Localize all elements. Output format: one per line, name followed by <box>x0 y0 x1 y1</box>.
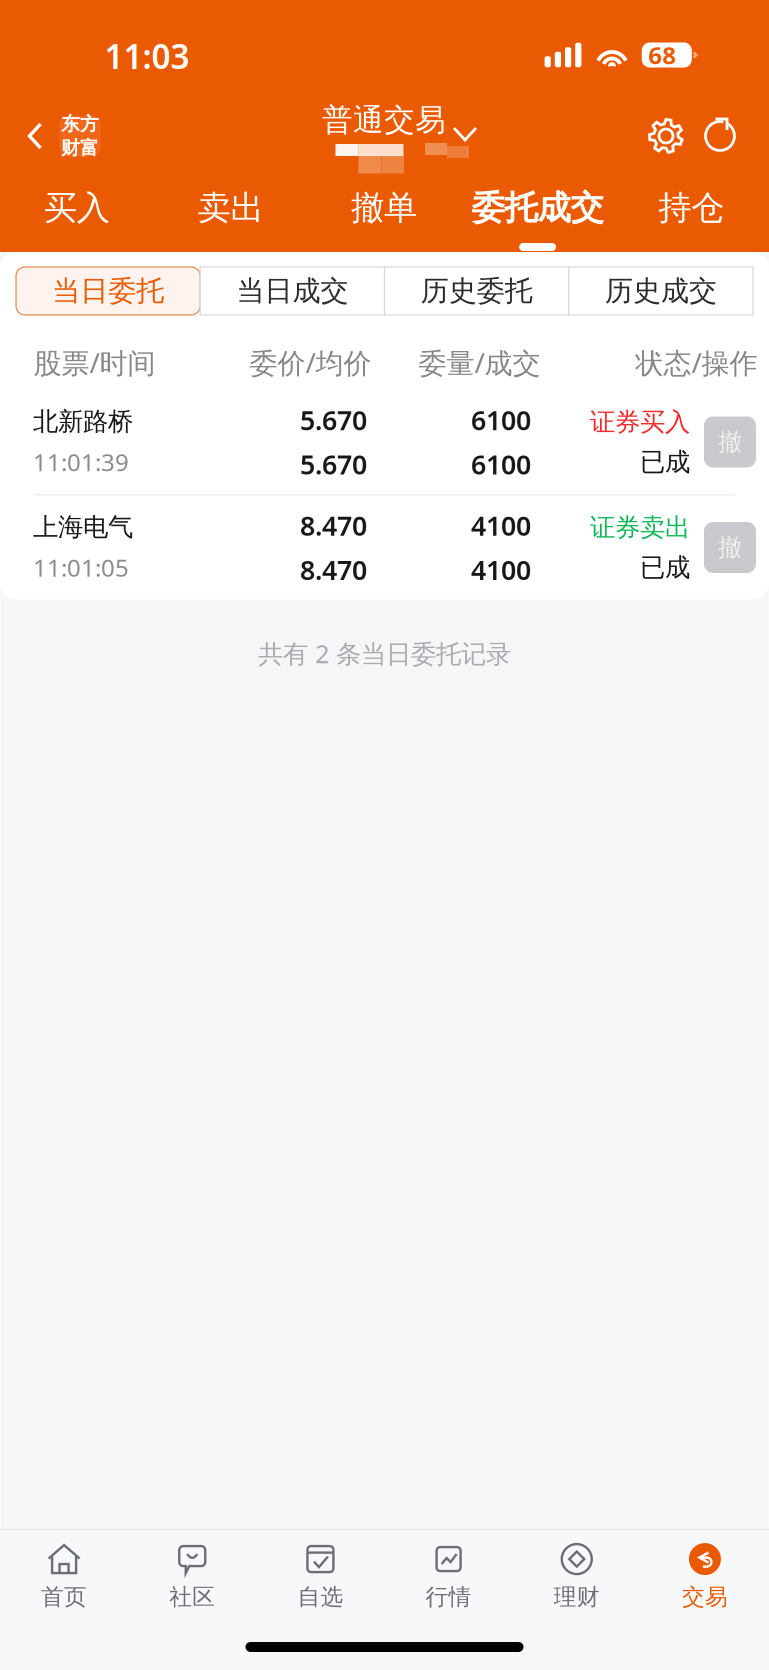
staticText: 普通交易 <box>322 101 446 139</box>
button[interactable]: 撤 <box>704 522 756 573</box>
staticText: 已成 <box>640 446 690 478</box>
staticText: 共有 2 条当日委托记录 <box>258 636 511 670</box>
button[interactable]: 卖出 <box>154 176 307 252</box>
staticText: 东方 <box>61 113 99 135</box>
staticText: 11:01:05 <box>33 552 129 583</box>
staticText: 首页 <box>41 1583 87 1611</box>
button[interactable]: 自选 <box>256 1537 384 1617</box>
staticText: 卖出 <box>197 187 263 228</box>
staticText: 财富 <box>61 136 99 159</box>
button[interactable]: 首页 <box>0 1537 128 1617</box>
staticText: 11:01:39 <box>33 446 129 478</box>
staticText: 6100 <box>471 402 531 437</box>
button[interactable]: 普通交易 <box>280 95 520 185</box>
button[interactable]: 历史成交 <box>569 267 753 315</box>
button[interactable]: 当日成交 <box>200 267 384 315</box>
staticText: 6100 <box>471 446 531 482</box>
staticText: 8.470 <box>300 552 367 587</box>
staticText: 已成 <box>640 552 690 583</box>
staticText: 11:03 <box>104 34 189 78</box>
staticText: 撤单 <box>351 187 417 228</box>
staticText: 委价/均价 <box>249 344 371 381</box>
button[interactable]: 历史委托 <box>384 267 569 315</box>
staticText: 8.470 <box>300 508 367 543</box>
button[interactable]: 行情 <box>384 1537 513 1617</box>
button[interactable]: 设置 <box>638 108 694 164</box>
button[interactable]: 买入 <box>0 176 154 252</box>
staticText: 股票/时间 <box>33 344 155 381</box>
staticText: 4100 <box>471 508 531 543</box>
button[interactable]: 刷新 <box>693 108 749 164</box>
staticText: 历史委托 <box>421 274 533 308</box>
staticText: 北新路桥 <box>33 406 133 437</box>
staticText: 买入 <box>44 187 110 228</box>
staticText: 当日委托 <box>52 274 164 308</box>
staticText: 委托成交 <box>472 187 604 228</box>
button[interactable]: 社区 <box>128 1537 256 1617</box>
button[interactable]: 当日委托 <box>16 267 200 315</box>
button[interactable]: 返回 <box>14 106 110 166</box>
staticText: 社区 <box>169 1583 215 1611</box>
staticText: 行情 <box>426 1583 472 1611</box>
staticText: 持仓 <box>658 187 724 228</box>
staticText: 状态/操作 <box>635 344 757 381</box>
staticText: 4100 <box>471 552 531 587</box>
staticText: 5.670 <box>300 402 367 437</box>
staticText: 证券卖出 <box>590 512 690 543</box>
button[interactable]: 撤单 <box>307 176 461 252</box>
staticText: 5.670 <box>300 446 367 482</box>
staticText: 撤 <box>718 533 742 562</box>
staticText: 自选 <box>297 1583 343 1611</box>
staticText: 68 <box>648 39 676 71</box>
button[interactable]: 撤 <box>704 416 756 467</box>
staticText: 历史成交 <box>605 274 717 308</box>
button[interactable]: 委托成交 <box>461 176 614 252</box>
staticText: 证券买入 <box>590 406 690 437</box>
staticText: 交易 <box>682 1583 728 1611</box>
staticText: 撤 <box>718 427 742 457</box>
button[interactable]: 持仓 <box>614 176 768 252</box>
staticText: 理财 <box>554 1583 600 1611</box>
staticText: 上海电气 <box>33 511 133 543</box>
staticText: 委量/成交 <box>418 344 540 381</box>
staticText: 当日成交 <box>236 274 348 308</box>
button[interactable]: 理财 <box>513 1537 641 1617</box>
button[interactable]: 交易 <box>641 1537 769 1617</box>
